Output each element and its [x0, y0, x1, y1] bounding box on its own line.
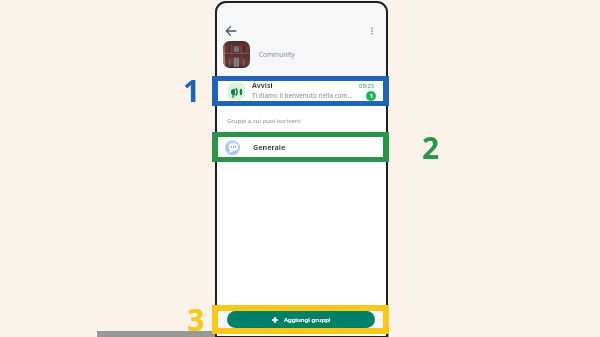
button[interactable]: Community	[223, 41, 343, 68]
staticText: 1	[370, 93, 373, 100]
button[interactable]: Generale	[218, 137, 383, 157]
staticText: 2	[422, 127, 440, 168]
staticText: Ti diamo il benvenuto nella com...	[252, 91, 353, 100]
staticText: Gruppi a cui puoi iscriverti	[227, 117, 301, 125]
staticText: 09:25	[359, 82, 375, 90]
button[interactable]: More options	[363, 22, 380, 39]
button[interactable]: Avvisi	[218, 81, 383, 101]
staticText: Avvisi	[252, 81, 273, 91]
staticText: 1	[183, 70, 201, 111]
staticText: Community	[259, 50, 295, 59]
staticText: 3	[187, 299, 205, 337]
staticText: Aggiungi gruppi	[284, 316, 331, 324]
button[interactable]: Aggiungi gruppi	[227, 311, 375, 328]
button[interactable]: Back	[222, 22, 239, 39]
staticText: Generale	[253, 142, 286, 152]
